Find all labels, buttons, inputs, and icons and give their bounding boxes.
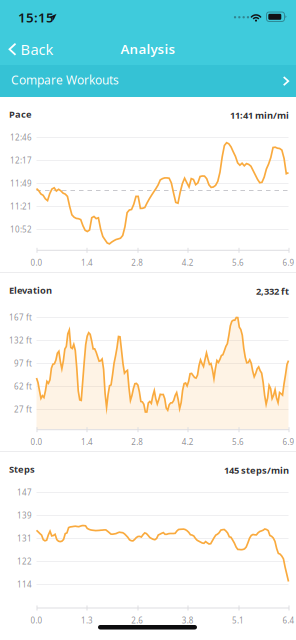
button[interactable]: Back <box>0 33 62 65</box>
staticText: 27 ft <box>14 404 32 415</box>
staticText: 11:41 min/mi <box>230 109 289 121</box>
staticText: 5.6 <box>232 257 244 268</box>
staticText: 11:21 <box>10 201 32 212</box>
staticText: Steps <box>9 463 35 475</box>
staticText: 167 ft <box>9 312 32 323</box>
staticText: 1.3 <box>81 615 93 626</box>
staticText: 12:46 <box>10 132 32 143</box>
staticText: 3.8 <box>182 615 194 626</box>
staticText: Pace <box>9 108 32 120</box>
staticText: 1.4 <box>81 257 93 268</box>
staticText: 0.0 <box>30 615 42 626</box>
staticText: 4.2 <box>182 257 194 268</box>
staticText: 2.6 <box>131 615 143 626</box>
staticText: 2.8 <box>131 257 143 268</box>
staticText: 97 ft <box>14 358 32 369</box>
staticText: 131 <box>17 533 32 544</box>
staticText: 0.0 <box>30 437 42 447</box>
staticText: 15:15 <box>18 8 54 26</box>
staticText: 10:52 <box>10 224 32 235</box>
staticText: 12:17 <box>10 155 32 166</box>
staticText: 1.4 <box>81 437 93 447</box>
staticText: Compare Workouts <box>11 72 119 88</box>
staticText: 62 ft <box>14 381 32 392</box>
staticText: 145 steps/min <box>224 464 289 476</box>
button[interactable]: Compare Workouts <box>0 65 296 97</box>
staticText: Elevation <box>9 284 52 296</box>
staticText: 6.9 <box>282 257 294 268</box>
staticText: Back <box>20 39 53 59</box>
staticText: 5.6 <box>232 437 244 447</box>
staticText: 6.4 <box>282 615 294 626</box>
staticText: 132 ft <box>9 335 32 346</box>
staticText: 2,332 ft <box>256 285 289 297</box>
staticText: Analysis <box>120 40 175 58</box>
staticText: 6.9 <box>282 437 294 447</box>
staticText: 122 <box>17 556 32 567</box>
staticText: 139 <box>17 510 32 521</box>
staticText: 11:49 <box>10 178 32 189</box>
staticText: 114 <box>17 579 32 590</box>
staticText: 5.1 <box>232 615 244 626</box>
staticText: 0.0 <box>30 257 42 268</box>
staticText: 4.2 <box>182 437 194 447</box>
staticText: 2.8 <box>131 437 143 447</box>
staticText: 147 <box>17 487 32 498</box>
